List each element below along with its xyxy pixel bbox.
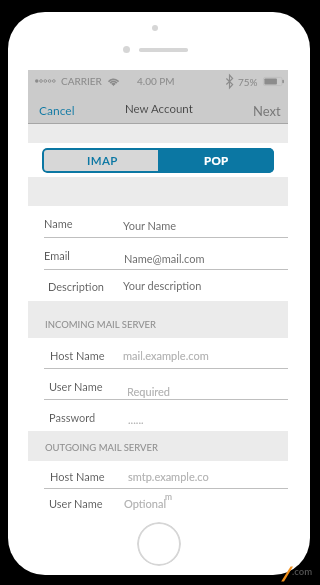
staticText: Cancel xyxy=(39,103,75,117)
button[interactable]: IMAP xyxy=(42,148,158,173)
staticText: INCOMING MAIL SERVER xyxy=(45,319,157,330)
staticText: Name@mail.com xyxy=(124,252,205,265)
staticText: Your description xyxy=(123,279,202,292)
button[interactable]: Description xyxy=(28,270,288,301)
staticText: Your Name xyxy=(123,219,177,232)
staticText: Required xyxy=(127,385,171,398)
staticText: User Name xyxy=(49,380,103,393)
button[interactable]: Name xyxy=(28,206,288,238)
staticText: ...... xyxy=(128,413,144,426)
button[interactable]: Host Name xyxy=(28,461,288,489)
button[interactable]: Email xyxy=(28,238,288,270)
staticText: 75% xyxy=(238,76,258,88)
button[interactable]: Cancel xyxy=(36,100,78,120)
button[interactable]: Home xyxy=(137,522,181,566)
staticText: New Account xyxy=(125,102,193,116)
staticText: IMAP xyxy=(87,154,118,168)
staticText: User Name xyxy=(49,497,103,510)
staticText: mail.example.com xyxy=(123,349,209,362)
staticText: Name xyxy=(44,217,73,230)
button[interactable]: User Name xyxy=(28,489,288,515)
staticText: Password xyxy=(49,411,96,424)
staticText: Host Name xyxy=(50,349,105,362)
staticText: Host Name xyxy=(50,470,105,483)
button[interactable]: Password xyxy=(28,400,288,431)
staticText: smtp.example.co xyxy=(128,470,209,483)
staticText: Optional xyxy=(124,497,167,510)
staticText: m xyxy=(165,492,172,502)
staticText: Description xyxy=(48,280,105,293)
button[interactable]: Next xyxy=(250,100,284,122)
staticText: 4.00 PM xyxy=(137,75,175,87)
staticText: Email xyxy=(44,249,70,262)
button[interactable]: POP xyxy=(158,148,274,173)
staticText: OUTGOING MAIL SERVER xyxy=(45,442,158,453)
button[interactable]: Host Name xyxy=(28,338,288,369)
button[interactable]: User Name xyxy=(28,369,288,400)
staticText: Next xyxy=(253,103,281,119)
staticText: POP xyxy=(204,154,229,168)
staticText: CARRIER xyxy=(61,75,102,87)
staticText: .com xyxy=(292,566,313,577)
